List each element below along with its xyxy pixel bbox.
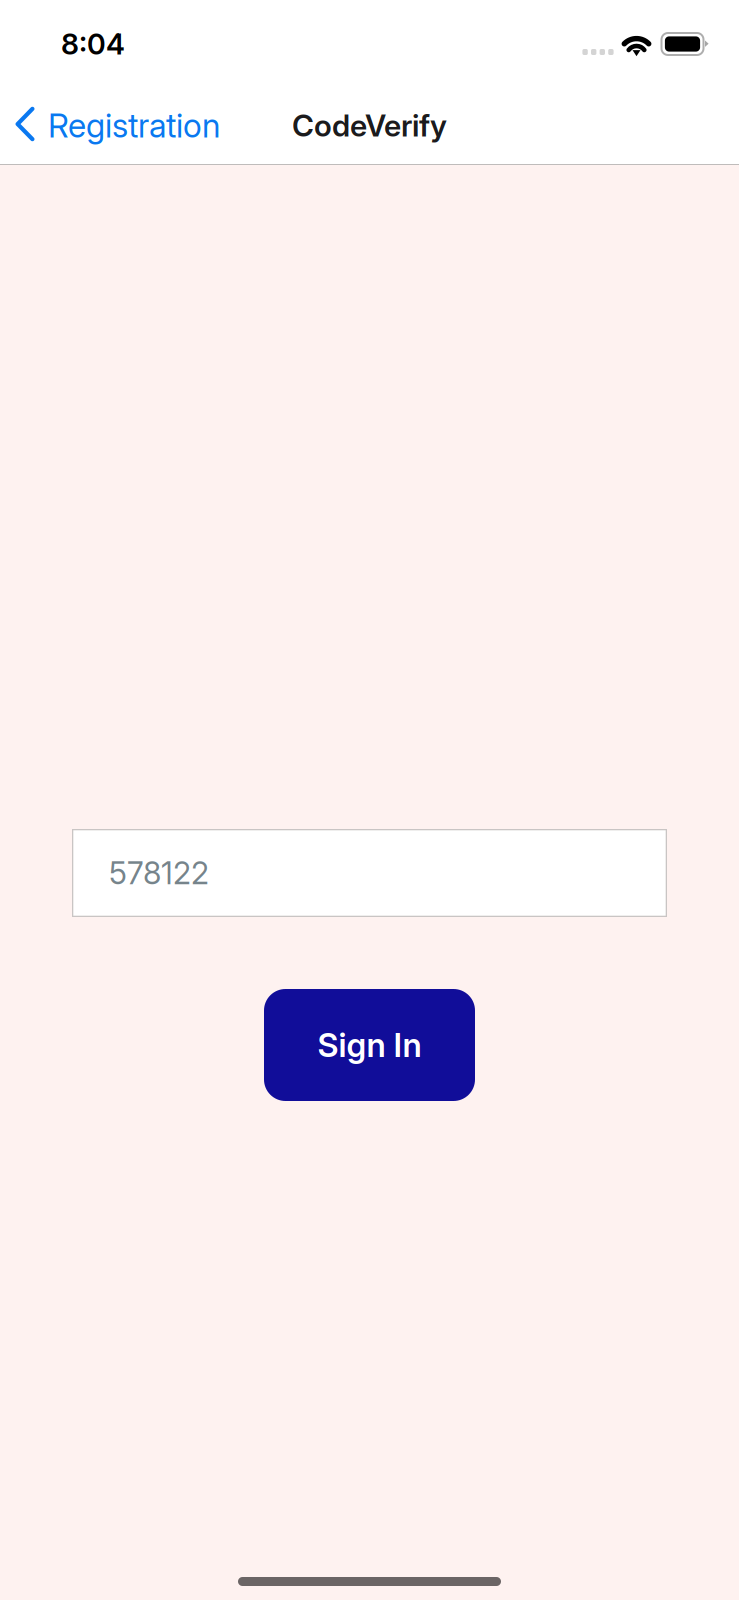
button[interactable]: Sign In [264,989,475,1101]
staticText: Sign In [317,1025,421,1065]
staticText: 8:04 [61,27,125,61]
staticText: CodeVerify [292,107,447,144]
button[interactable]: 578122 [72,829,667,917]
button[interactable]: Registration [0,88,232,164]
staticText: 578122 [109,854,209,891]
staticText: Registration [48,106,220,145]
